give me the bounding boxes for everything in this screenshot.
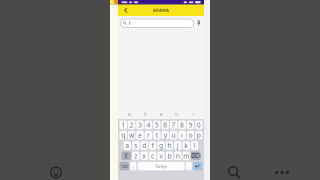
staticText: j xyxy=(177,141,179,150)
button[interactable]: r xyxy=(145,131,152,139)
staticText: w xyxy=(129,131,134,140)
button[interactable]: l xyxy=(191,141,198,150)
staticText: 0 xyxy=(197,120,201,129)
staticText: g xyxy=(159,141,163,150)
staticText: d xyxy=(142,141,146,150)
staticText: l xyxy=(194,141,196,150)
staticText: 7 xyxy=(172,120,176,129)
button[interactable]: e xyxy=(136,131,144,139)
button[interactable]: ↵ xyxy=(193,162,202,170)
staticText: 3 xyxy=(138,120,142,129)
button[interactable]: 4 xyxy=(145,121,152,129)
button[interactable]: z xyxy=(132,151,139,160)
button[interactable]: Stickers xyxy=(153,113,169,116)
staticText: n xyxy=(176,151,180,160)
button[interactable]: 8 xyxy=(178,121,186,129)
button[interactable]: m xyxy=(183,151,190,160)
staticText: 6 xyxy=(163,120,167,129)
button[interactable]: 9 xyxy=(187,121,194,129)
button[interactable]: h xyxy=(166,141,173,150)
button[interactable]: a xyxy=(124,141,131,150)
staticText: ⌦ xyxy=(191,152,200,160)
button[interactable]: Search xyxy=(169,113,185,116)
button[interactable]: 6 xyxy=(162,121,169,129)
button[interactable]: More xyxy=(268,161,296,180)
staticText: c xyxy=(151,151,154,160)
staticText: Türkçe xyxy=(155,163,167,169)
button[interactable]: c xyxy=(149,151,156,160)
button[interactable]: ⌦ xyxy=(191,151,201,160)
button[interactable]: f xyxy=(149,141,156,150)
button[interactable]: 123 xyxy=(119,162,129,170)
staticText: s xyxy=(134,141,137,150)
button[interactable]: w xyxy=(128,131,135,139)
button[interactable]: y xyxy=(162,131,169,139)
staticText: t xyxy=(156,131,158,140)
button[interactable]: s xyxy=(132,141,139,150)
button[interactable]: v xyxy=(157,151,165,160)
button[interactable]: n xyxy=(174,151,181,160)
button[interactable]: Voice search xyxy=(196,19,201,27)
staticText: 1 xyxy=(121,120,125,129)
button[interactable]: ı xyxy=(178,131,186,139)
staticText: o xyxy=(188,131,192,140)
staticText: b xyxy=(167,151,171,160)
staticText: x xyxy=(142,151,146,160)
staticText: 5 xyxy=(155,120,159,129)
button[interactable]: p xyxy=(195,131,202,139)
staticText: q xyxy=(121,131,125,140)
staticText: ı xyxy=(181,131,183,140)
button[interactable]: 1 xyxy=(119,121,127,129)
button[interactable]: 3 xyxy=(136,121,144,129)
staticText: 2 xyxy=(130,120,134,129)
staticText: y xyxy=(164,131,167,140)
button[interactable]: q xyxy=(119,131,127,139)
staticText: 4 xyxy=(146,120,150,129)
button[interactable]: x xyxy=(140,151,148,160)
button[interactable]: j xyxy=(174,141,181,150)
staticText: f xyxy=(152,141,154,150)
staticText: ↵ xyxy=(195,162,201,170)
button[interactable]: k xyxy=(183,141,190,150)
button[interactable]: b xyxy=(166,151,173,160)
staticText: 123 xyxy=(121,163,127,169)
button[interactable]: 5 xyxy=(153,121,160,129)
staticText: h xyxy=(167,141,171,150)
staticText: . xyxy=(188,163,189,170)
button[interactable]: 0 xyxy=(195,121,202,129)
button[interactable]: g xyxy=(157,141,165,150)
staticText: p xyxy=(197,131,201,140)
staticText: ⇧ xyxy=(123,152,129,160)
button[interactable]: 7 xyxy=(170,121,177,129)
staticText: 9 xyxy=(188,120,192,129)
button[interactable]: . xyxy=(186,162,192,170)
staticText: u xyxy=(172,131,176,140)
button[interactable]: Back xyxy=(119,6,131,15)
staticText: 8 xyxy=(180,120,184,129)
button[interactable]: d xyxy=(140,141,148,150)
button[interactable]: ⇧ xyxy=(121,151,131,160)
staticText: , xyxy=(133,163,134,170)
button[interactable]: Emoji xyxy=(45,161,67,180)
staticText: r xyxy=(147,131,150,140)
button[interactable]: 2 xyxy=(128,121,135,129)
button[interactable]: Emoji xyxy=(121,113,137,116)
staticText: k xyxy=(184,141,188,150)
button[interactable]: Search xyxy=(223,161,246,180)
button[interactable]: , xyxy=(130,162,136,170)
button[interactable]: u xyxy=(170,131,177,139)
staticText: e xyxy=(138,131,142,140)
button[interactable]: More xyxy=(185,114,200,115)
staticText: z xyxy=(134,151,137,160)
staticText: ARAMA xyxy=(153,8,169,13)
staticText: v xyxy=(159,151,162,160)
button[interactable]: t xyxy=(153,131,160,139)
button[interactable]: Dictation xyxy=(137,112,153,116)
staticText: m xyxy=(183,151,189,160)
staticText: a xyxy=(125,141,129,150)
button[interactable]: Türkçe xyxy=(137,162,185,170)
button[interactable]: o xyxy=(187,131,194,139)
